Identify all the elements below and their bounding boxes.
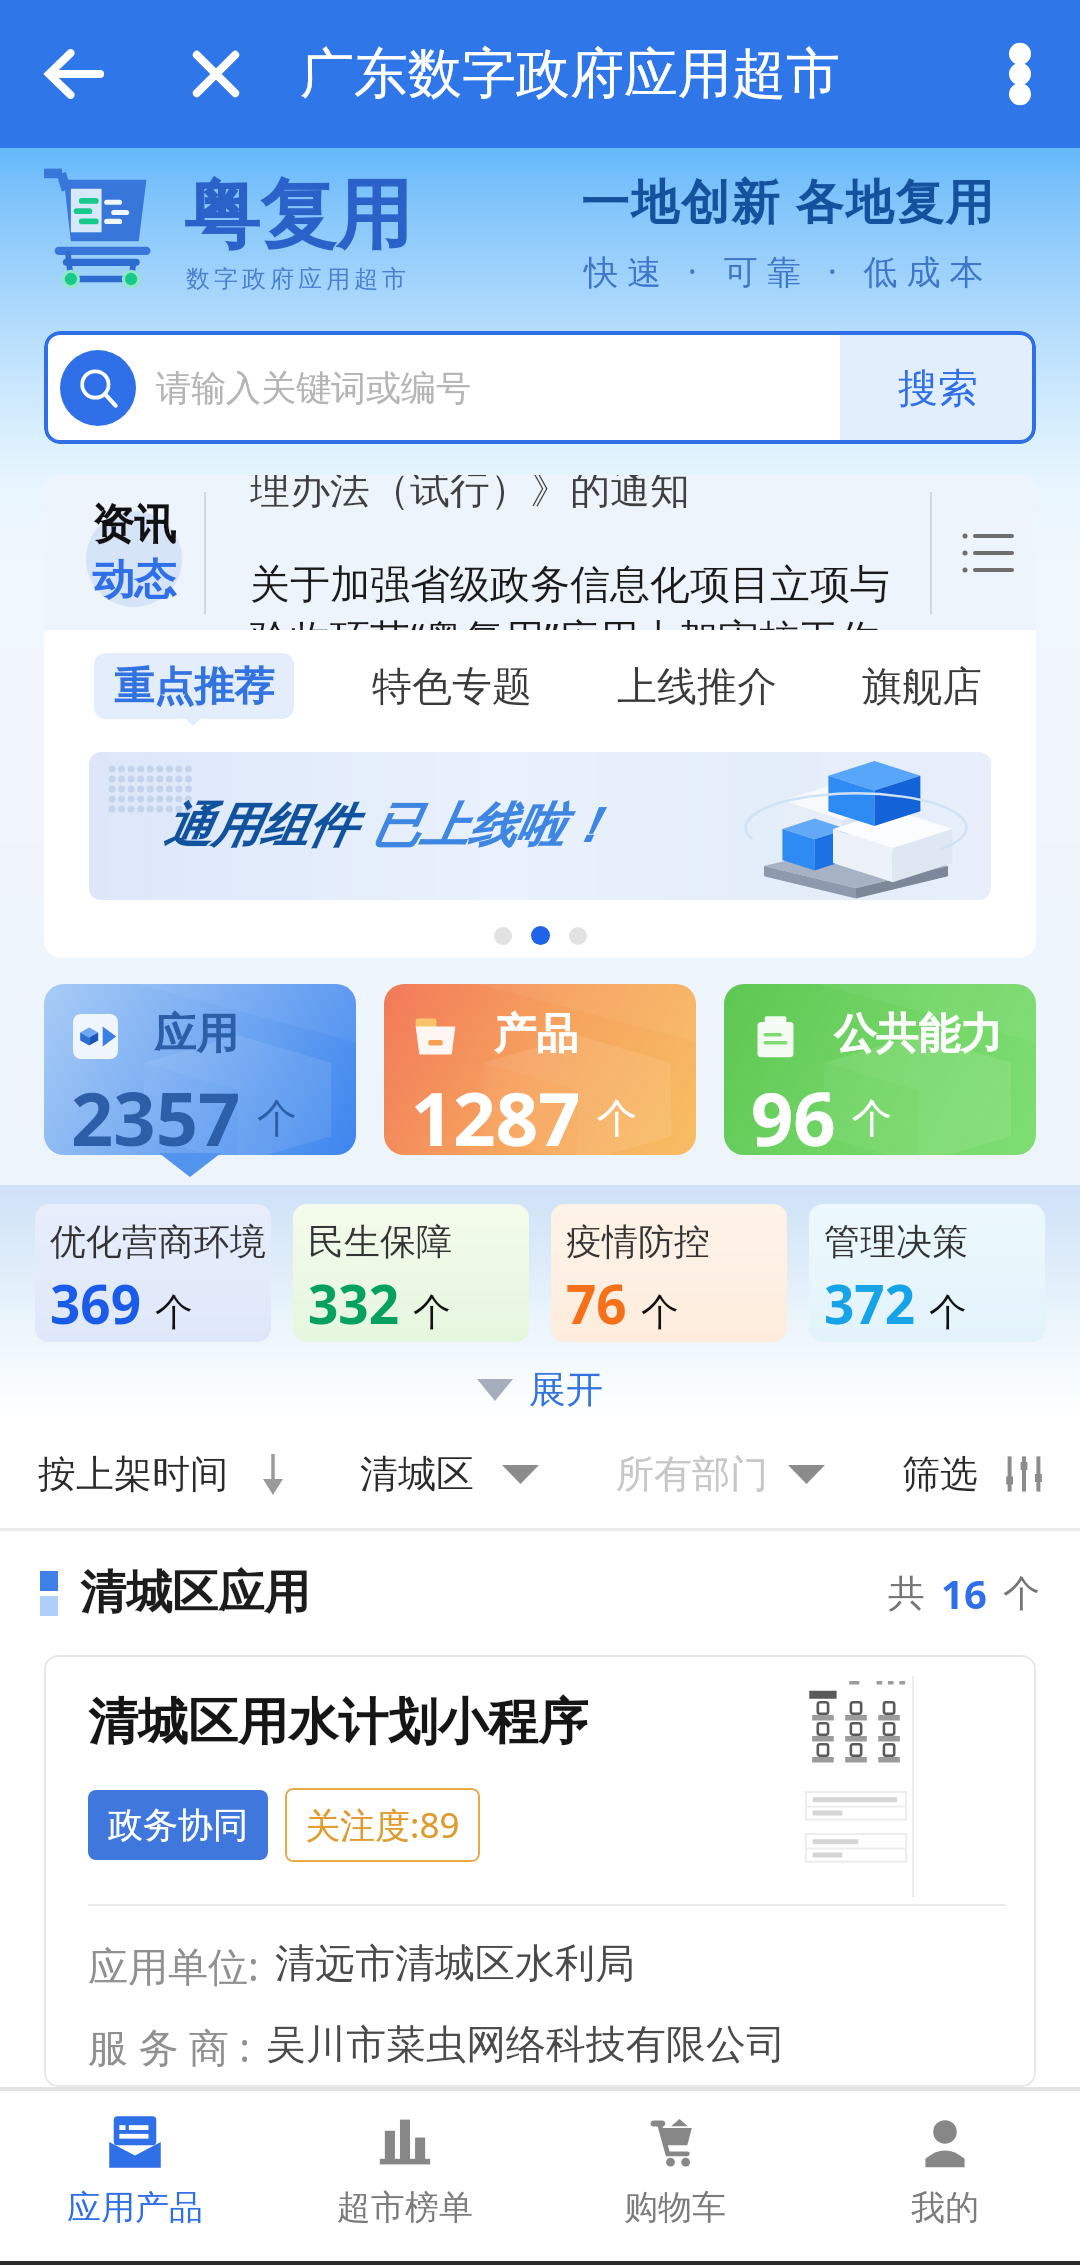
staticText: 旗舰店 [862,661,982,711]
staticText: 一地创新 各地复用 [581,168,996,234]
button[interactable]: 请输入关键词或编号 [44,331,1036,444]
staticText: 优化营商环境 [50,1219,266,1264]
staticText: 验收环节“粤复用”应用上架审核工作 [250,610,879,630]
staticText: 民生保障 [308,1219,452,1264]
staticText: 已上线啦！ [371,796,611,856]
staticText: 资讯 [92,499,176,552]
staticText: 96 [751,1067,836,1155]
staticText: 超市榜单 [337,2186,473,2229]
button[interactable]: 筛选 [902,1450,1044,1498]
staticText: 广东数字政府应用超市 [300,40,840,108]
staticText: 产品 [494,1008,578,1061]
staticText: 上线推介 [617,661,777,711]
staticText: 请输入关键词或编号 [156,366,471,410]
button[interactable]: 搜索 [840,331,1036,444]
staticText: 个 [155,1288,193,1336]
staticText: 数字政府应用超市 [184,264,408,294]
staticText: 应用 [154,1008,238,1061]
staticText: 清远市清城区水利局 [275,1938,635,1988]
staticText: 粤复用 [184,168,412,264]
button[interactable]: Back [28,28,120,120]
button[interactable]: 展开 [463,1360,617,1419]
staticText: 关注度:89 [305,1801,460,1849]
button[interactable]: 产品 [384,984,696,1155]
button[interactable]: 重点推荐 [94,653,294,719]
staticText: 疫情防控 [566,1219,710,1264]
button[interactable]: 特色专题 [364,645,540,727]
button[interactable]: 通用组件 [89,752,991,900]
staticText: 个 [413,1288,451,1336]
staticText: 服 务 商 : [88,2019,250,2074]
staticText: 个 [641,1288,679,1336]
staticText: 个 [257,1093,297,1143]
staticText: 372 [824,1267,915,1339]
staticText: 快速 · 可靠 · 低成本 [584,248,993,294]
staticText: 369 [50,1267,141,1339]
button[interactable]: 我的 [810,2091,1080,2261]
button[interactable]: 清城区 [360,1450,539,1498]
staticText: 筛选 [902,1450,978,1498]
staticText: 动态 [92,554,176,607]
staticText: 个 [1003,1570,1040,1617]
staticText: 76 [566,1267,627,1339]
staticText: 共 [888,1570,925,1617]
staticText: 16 [941,1566,987,1620]
staticText: 个 [597,1093,637,1143]
button[interactable]: 公共能力 [724,984,1036,1155]
staticText: 个 [929,1288,967,1336]
button[interactable]: 应用 [44,984,356,1155]
button[interactable]: News list [958,524,1016,582]
staticText: 政务协同 [108,1803,248,1847]
button[interactable]: 购物车 [540,2091,810,2261]
staticText: 1287 [411,1067,581,1155]
button[interactable]: Close [170,28,262,120]
staticText: 清城区应用 [80,1564,310,1622]
button[interactable]: 疫情防控 [551,1204,787,1342]
staticText: 应用产品 [67,2186,203,2229]
button[interactable]: 管理决策 [809,1204,1045,1342]
staticText: 关于加强省级政务信息化项目立项与 [250,559,890,609]
button[interactable]: 所有部门 [616,1450,825,1498]
staticText: 所有部门 [616,1450,768,1498]
staticText: 重点推荐 [114,661,274,711]
staticText: 我的 [911,2186,979,2229]
staticText: 购物车 [624,2186,726,2229]
button[interactable]: 清城区用水计划小程序 [44,1655,1036,2087]
staticText: 搜索 [898,363,978,413]
staticText: 清城区用水计划小程序 [88,1691,588,1754]
button[interactable]: 关注度:89 [285,1788,480,1862]
button[interactable]: 超市榜单 [270,2091,540,2261]
staticText: 通用组件 [163,796,355,856]
staticText: 2357 [71,1067,241,1155]
button[interactable]: 旗舰店 [854,645,990,727]
button[interactable]: 民生保障 [293,1204,529,1342]
button[interactable]: 按上架时间 [38,1450,284,1498]
button[interactable]: More options [974,28,1066,120]
button[interactable]: 政务协同 [88,1790,268,1860]
staticText: 展开 [529,1366,603,1413]
button[interactable]: 优化营商环境 [35,1204,271,1342]
staticText: 按上架时间 [38,1450,228,1498]
staticText: 清城区 [360,1450,474,1498]
staticText: 332 [308,1267,399,1339]
staticText: 应用单位: [88,1938,259,1993]
staticText: 公共能力 [834,1008,1002,1061]
staticText: 理办法（试行）》的通知 [250,475,690,514]
button[interactable]: 上线推介 [609,645,785,727]
button[interactable]: 应用产品 [0,2091,270,2261]
staticText: 吴川市菜虫网络科技有限公司 [266,2019,786,2069]
staticText: 个 [852,1093,892,1143]
staticText: 特色专题 [372,661,532,711]
staticText: 管理决策 [824,1219,968,1264]
